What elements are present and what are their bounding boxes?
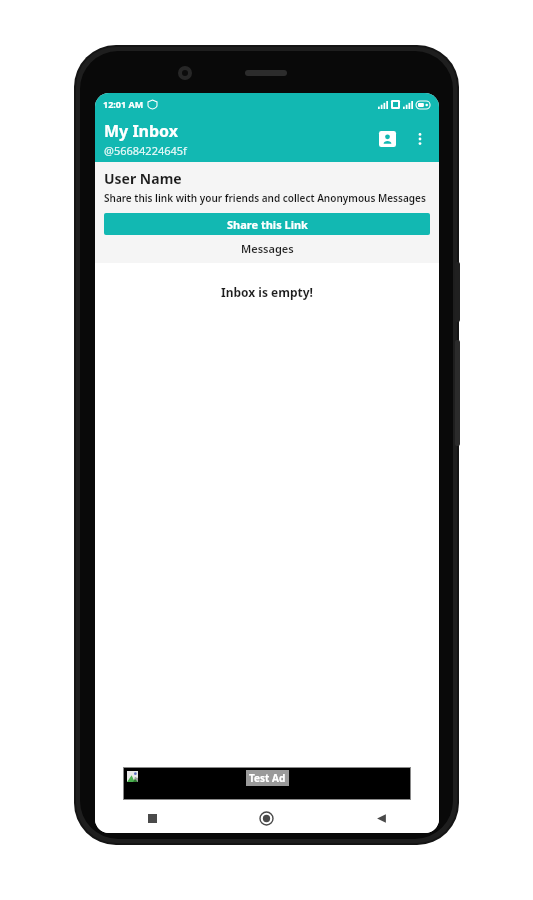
staticText: Test Ad [249,771,286,785]
button[interactable]: Contact [369,121,405,157]
staticText: User Name [104,169,182,188]
staticText: Messages [241,241,294,256]
staticText: @56684224645f [104,143,187,158]
staticText: Share this link with your friends and co… [104,191,426,205]
staticText: Inbox is empty! [221,284,313,300]
button[interactable]: Share this Link [104,213,430,235]
button[interactable]: Test Ad [124,768,410,799]
button[interactable]: More options [405,124,435,154]
button[interactable]: Back [324,803,439,833]
button[interactable]: Home [209,803,324,833]
staticText: Share this Link [227,217,308,232]
staticText: 12:01 AM [103,98,144,110]
button[interactable]: Recents [95,803,209,833]
staticText: My Inbox [104,120,179,142]
